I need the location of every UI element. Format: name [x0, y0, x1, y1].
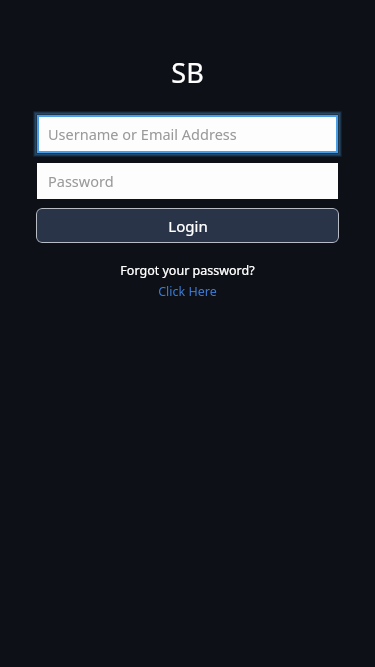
button[interactable]: Username or Email Address: [37, 115, 338, 153]
staticText: Forgot your password?: [120, 262, 255, 279]
staticText: Password: [48, 171, 114, 191]
staticText: Click Here: [158, 283, 217, 300]
button[interactable]: Password: [37, 163, 338, 199]
staticText: Username or Email Address: [48, 124, 237, 144]
staticText: Login: [168, 216, 208, 236]
button[interactable]: Click Here: [152, 282, 223, 301]
button[interactable]: Login: [36, 208, 339, 243]
staticText: SB: [171, 54, 204, 91]
